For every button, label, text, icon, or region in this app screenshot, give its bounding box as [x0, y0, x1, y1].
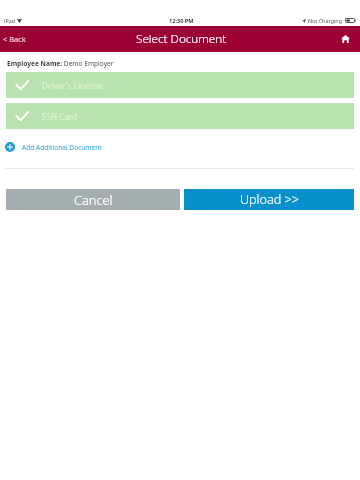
staticText: Select Document [136, 30, 227, 46]
staticText: Not Charging [308, 17, 342, 24]
staticText: Driver's License [42, 80, 103, 91]
staticText: Cancel [74, 191, 113, 208]
staticText: iPad [4, 17, 15, 24]
staticText: Employee Name: Demo Employer [7, 59, 114, 68]
button[interactable]: < Back [0, 26, 32, 52]
staticText: Add Additional Document [22, 143, 102, 152]
button[interactable]: Add Additional Document [4, 139, 103, 155]
staticText: Upload >> [240, 191, 299, 208]
button[interactable]: Home [334, 26, 360, 52]
button[interactable]: Cancel [6, 189, 180, 210]
staticText: SSN Card [42, 111, 78, 122]
staticText: 12:30 PM [169, 17, 194, 25]
button[interactable]: Upload >> [184, 189, 354, 210]
staticText: < Back [3, 34, 26, 44]
button[interactable]: Driver's License [6, 72, 354, 98]
button[interactable]: SSN Card [6, 103, 354, 129]
